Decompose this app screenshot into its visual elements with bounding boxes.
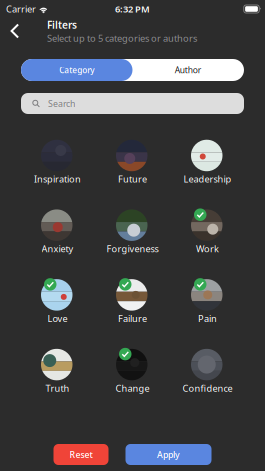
staticText: Failure xyxy=(118,312,147,325)
button[interactable]: Anxiety xyxy=(20,201,95,259)
button[interactable]: Failure xyxy=(95,270,170,328)
staticText: Change xyxy=(115,382,149,394)
staticText: Work xyxy=(196,242,219,255)
button[interactable]: Author xyxy=(132,59,244,81)
staticText: Search xyxy=(48,97,75,109)
button[interactable]: Work xyxy=(170,201,245,259)
button[interactable]: Leadership xyxy=(170,131,245,189)
staticText: Reset xyxy=(69,448,92,460)
staticText: Pain xyxy=(198,312,217,325)
button[interactable]: Change xyxy=(95,340,170,398)
staticText: Apply xyxy=(157,448,180,460)
button[interactable]: Inspiration xyxy=(20,131,95,189)
staticText: Category xyxy=(59,64,94,76)
button[interactable]: Apply xyxy=(125,444,211,465)
button[interactable]: Confidence xyxy=(170,340,245,398)
staticText: Forgiveness xyxy=(106,242,158,255)
staticText: Inspiration xyxy=(34,173,81,185)
staticText: 6:32 PM xyxy=(115,3,150,15)
button[interactable]: Future xyxy=(95,131,170,189)
staticText: Select up to 5 categories or authors xyxy=(47,32,197,44)
staticText: Future xyxy=(118,173,147,185)
button[interactable]: Reset xyxy=(53,444,108,465)
button[interactable]: Category xyxy=(21,59,132,81)
button[interactable]: Truth xyxy=(20,340,95,398)
staticText: Love xyxy=(47,312,67,325)
staticText: Author xyxy=(175,64,202,76)
staticText: Filters xyxy=(47,18,77,32)
button[interactable]: Pain xyxy=(170,270,245,328)
button[interactable]: Forgiveness xyxy=(95,201,170,259)
staticText: Anxiety xyxy=(41,242,73,255)
button[interactable]: Back xyxy=(0,15,47,47)
staticText: Confidence xyxy=(182,382,232,394)
staticText: Carrier xyxy=(6,3,36,15)
staticText: Leadership xyxy=(183,173,231,185)
button[interactable]: Search xyxy=(21,93,244,114)
button[interactable]: Love xyxy=(20,270,95,328)
staticText: Truth xyxy=(45,382,69,394)
